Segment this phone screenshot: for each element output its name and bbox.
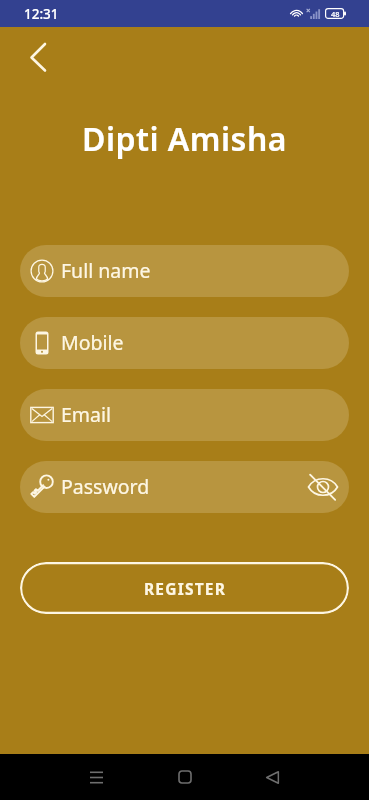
button[interactable]: Email — [20, 389, 349, 441]
button[interactable]: Password — [20, 461, 349, 513]
staticText: 48 — [331, 9, 340, 19]
button[interactable]: Home — [167, 759, 203, 795]
staticText: REGISTER — [144, 578, 227, 599]
button[interactable]: Mobile — [20, 317, 349, 369]
staticText: Email — [61, 401, 112, 428]
button[interactable]: Back — [24, 37, 64, 77]
button[interactable]: Recents — [78, 759, 114, 795]
button[interactable]: Full name — [20, 245, 349, 297]
staticText: 12:31 — [24, 5, 59, 23]
button[interactable]: Back — [254, 759, 290, 795]
button[interactable]: Toggle password visibility — [305, 469, 341, 505]
staticText: Password — [61, 473, 150, 500]
staticText: Dipti Amisha — [0, 117, 369, 161]
staticText: Mobile — [61, 329, 124, 356]
staticText: Full name — [61, 257, 151, 284]
button[interactable]: REGISTER — [20, 562, 349, 614]
